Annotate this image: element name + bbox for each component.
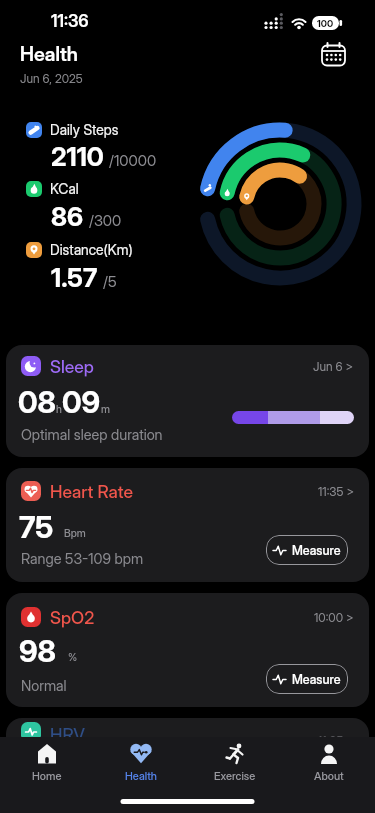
- staticText: Optimal sleep duration: [21, 426, 163, 444]
- button[interactable]: HRV: [6, 718, 369, 813]
- button[interactable]: SpO2: [6, 593, 369, 707]
- staticText: Heart Rate: [50, 481, 133, 502]
- staticText: 100: [317, 18, 334, 29]
- button[interactable]: Heart Rate: [6, 468, 369, 582]
- button[interactable]: About: [282, 737, 375, 797]
- button[interactable]: Sleep: [6, 345, 369, 457]
- button[interactable]: Exercise: [188, 737, 282, 797]
- staticText: 1.57: [51, 262, 98, 293]
- staticText: About: [314, 769, 344, 782]
- staticText: 08: [18, 384, 56, 420]
- button[interactable]: [318, 42, 350, 70]
- button[interactable]: Home: [0, 737, 94, 797]
- staticText: h: [56, 403, 62, 416]
- staticText: Health: [125, 769, 157, 782]
- staticText: 11:35 >: [318, 484, 354, 499]
- staticText: 11:35 >: [318, 733, 354, 748]
- button[interactable]: Measure: [266, 664, 348, 694]
- staticText: Home: [32, 769, 62, 782]
- staticText: 98: [19, 633, 56, 669]
- staticText: HRV: [50, 724, 86, 745]
- staticText: Bpm: [64, 527, 86, 540]
- button[interactable]: Measure: [266, 535, 348, 565]
- staticText: Health: [20, 42, 79, 66]
- staticText: KCal: [50, 180, 79, 197]
- staticText: 10:00 >: [314, 610, 354, 625]
- staticText: %: [68, 651, 78, 664]
- staticText: Range 53-109 bpm: [21, 550, 144, 568]
- staticText: Measure: [292, 543, 341, 558]
- staticText: Measure: [292, 672, 341, 687]
- staticText: 75: [19, 509, 54, 545]
- staticText: Sleep: [50, 356, 94, 377]
- staticText: Distance(Km): [50, 241, 133, 258]
- button[interactable]: Health: [94, 737, 188, 797]
- staticText: /10000: [109, 151, 157, 169]
- staticText: 09: [62, 384, 101, 420]
- staticText: 86: [51, 201, 84, 232]
- staticText: SpO2: [50, 607, 95, 628]
- staticText: Exercise: [214, 769, 256, 782]
- staticText: 11:36: [51, 11, 89, 32]
- staticText: Jun 6, 2025: [20, 71, 83, 86]
- staticText: 2110: [51, 141, 104, 172]
- staticText: /300: [89, 211, 122, 229]
- staticText: m: [101, 403, 110, 416]
- staticText: /5: [103, 272, 117, 290]
- staticText: Jun 6 >: [313, 359, 354, 374]
- staticText: Daily Steps: [50, 121, 119, 138]
- staticText: Normal: [21, 677, 67, 695]
